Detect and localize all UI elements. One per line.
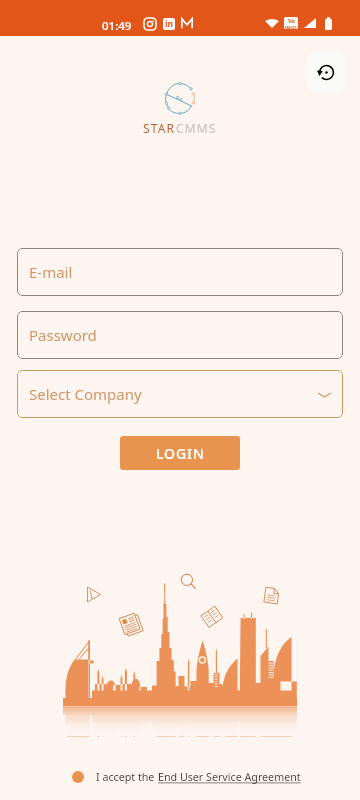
staticText: CMMS [176, 120, 217, 136]
staticText: 01:49 [102, 18, 132, 34]
button[interactable]: Select Company [17, 370, 343, 418]
staticText: E-mail [29, 262, 73, 282]
button[interactable]: Password [17, 311, 343, 359]
button[interactable]: I accept the [72, 765, 301, 789]
staticText: End User Service Agreement [158, 770, 301, 785]
staticText: LOGIN [156, 444, 205, 463]
staticText: WiFi [285, 24, 297, 29]
button[interactable]: LOGIN [120, 436, 240, 470]
staticText: Password [29, 325, 97, 345]
staticText: I accept the [96, 770, 158, 785]
button[interactable]: E-mail [17, 248, 343, 296]
staticText: STAR [143, 120, 176, 136]
staticText: Select Company [29, 384, 142, 404]
button[interactable]: Restore [306, 52, 346, 92]
staticText: in [165, 18, 174, 30]
staticText: Vo [288, 17, 295, 24]
